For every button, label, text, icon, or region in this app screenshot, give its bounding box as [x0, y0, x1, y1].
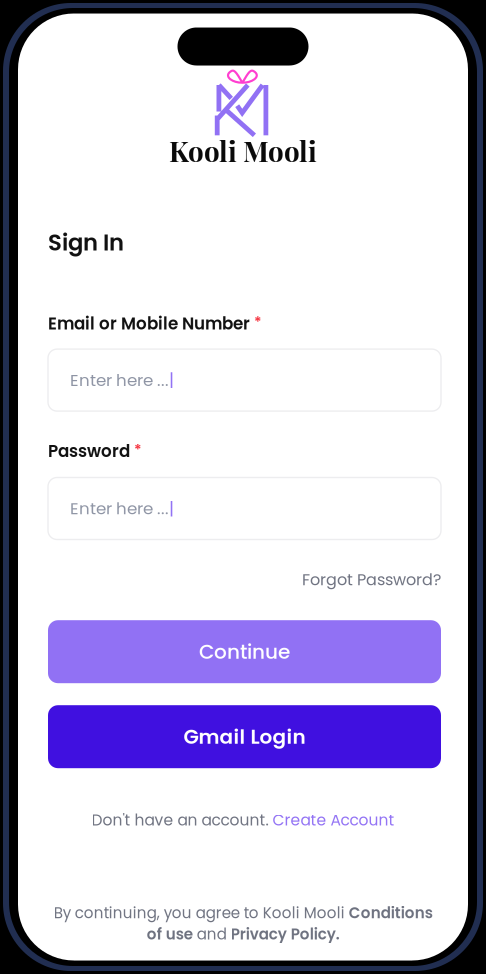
staticText: * [254, 312, 262, 332]
staticText: Email or Mobile Number [48, 312, 250, 335]
staticText: Enter here ... [70, 497, 169, 520]
staticText: Don't have an account. [91, 809, 272, 831]
staticText: Continue [199, 638, 290, 666]
staticText: | [169, 496, 174, 521]
staticText: Password [48, 439, 130, 463]
staticText: By continuing, you agree to Kooli Mooli … [53, 902, 432, 945]
button[interactable]: Create Account [272, 809, 394, 831]
staticText: | [169, 368, 174, 392]
staticText: Forgot Password? [302, 568, 441, 591]
button[interactable]: Gmail Login [48, 705, 441, 768]
staticText: Enter here ... [70, 368, 169, 392]
staticText: Gmail Login [183, 723, 305, 751]
staticText: * [134, 439, 142, 460]
staticText: Kooli Mooli [169, 132, 317, 169]
staticText: Create Account [272, 809, 394, 831]
staticText: Sign In [48, 227, 124, 258]
button[interactable]: Continue [48, 620, 441, 683]
button[interactable]: Forgot Password? [281, 568, 441, 590]
